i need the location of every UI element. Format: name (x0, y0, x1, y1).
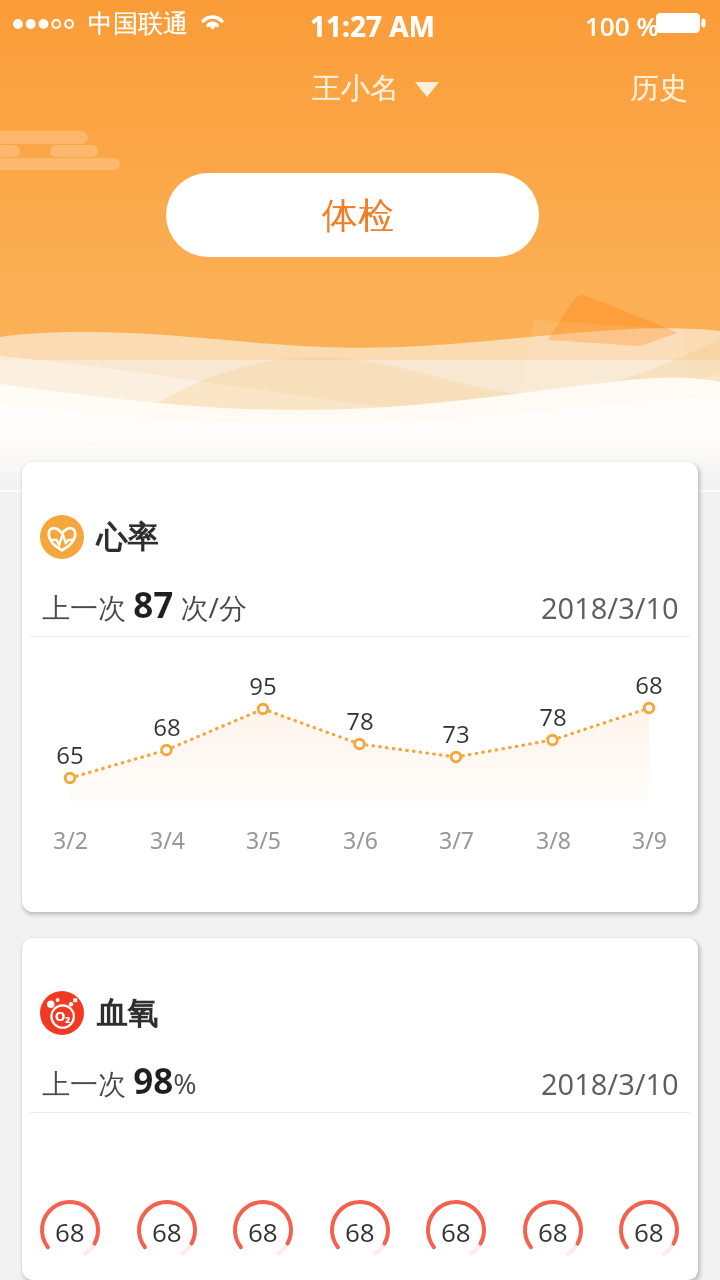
staticText: 78 (346, 704, 374, 737)
staticText: 68 (345, 1214, 375, 1249)
button[interactable]: 王小名 (308, 66, 443, 111)
staticText: 3/4 (150, 824, 185, 855)
staticText: 68 (635, 668, 663, 701)
staticText: 3/9 (632, 824, 667, 855)
staticText: 上一次 87 次/分 (42, 581, 248, 629)
staticText: 68 (634, 1214, 664, 1249)
button[interactable]: O₂ (22, 938, 698, 1280)
button[interactable]: 心率 (22, 462, 698, 912)
staticText: 心率 (96, 518, 158, 557)
button[interactable]: 68 (523, 1200, 583, 1260)
staticText: 68 (441, 1214, 471, 1249)
staticText: 68 (55, 1214, 85, 1249)
staticText: 65 (56, 738, 84, 771)
staticText: 3/5 (246, 824, 281, 855)
staticText: 3/2 (53, 824, 88, 855)
staticText: 王小名 (312, 70, 399, 107)
staticText: 68 (538, 1214, 568, 1249)
button[interactable]: 历史 (600, 60, 718, 117)
staticText: 100 % (585, 8, 659, 43)
staticText: 68 (153, 710, 181, 743)
button[interactable]: 68 (330, 1200, 390, 1260)
staticText: 3/8 (536, 824, 571, 855)
other: Switch user (415, 81, 439, 97)
staticText: 2018/3/10 (541, 588, 679, 627)
staticText: 体检 (322, 193, 394, 238)
button[interactable]: 68 (137, 1200, 197, 1260)
staticText: 血氧 (96, 994, 158, 1033)
staticText: O₂ (55, 1007, 71, 1025)
staticText: 3/6 (343, 824, 378, 855)
staticText: 历史 (630, 70, 688, 107)
staticText: 上一次 98% (42, 1057, 197, 1105)
button[interactable]: 68 (233, 1200, 293, 1260)
staticText: 3/7 (439, 824, 474, 855)
staticText: 73 (442, 717, 470, 750)
button[interactable]: 68 (426, 1200, 486, 1260)
staticText: 68 (152, 1214, 182, 1249)
staticText: 78 (539, 700, 567, 733)
button[interactable]: 68 (40, 1200, 100, 1260)
staticText: 95 (249, 669, 277, 702)
staticText: 11:27 AM (310, 7, 435, 45)
staticText: 2018/3/10 (541, 1064, 679, 1103)
button[interactable]: 68 (619, 1200, 679, 1260)
staticText: 68 (248, 1214, 278, 1249)
button[interactable]: 体检 (166, 173, 539, 257)
staticText: 中国联通 (88, 8, 188, 39)
